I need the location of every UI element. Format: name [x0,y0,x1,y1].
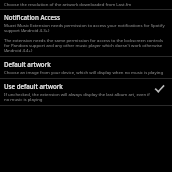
staticText: Muzei Music Extension needs permission t… [4,22,168,33]
staticText: Default artwork [4,60,51,68]
staticText: Choose an image from your device, which … [4,69,164,75]
button[interactable]: Use default artwork [0,79,172,105]
button[interactable]: Default artwork [0,57,172,78]
staticText: The extension needs the same permission … [4,37,168,53]
button[interactable]: Choose the resolution of the artwork dow… [0,0,172,9]
staticText: If unchecked, the extension will always … [4,91,150,102]
button[interactable]: Use default artwork checkbox [150,82,168,96]
staticText: Choose the resolution of the artwork dow… [4,1,132,7]
button[interactable]: Notification Access [0,10,172,35]
staticText: Notification Access [4,13,61,21]
staticText: Use default artwork [4,82,63,90]
